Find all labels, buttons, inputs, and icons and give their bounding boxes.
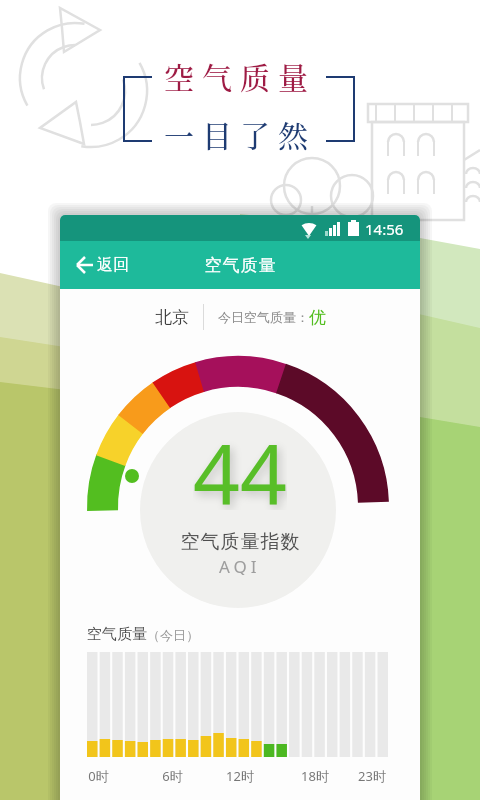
staticText: 返回 (97, 255, 129, 275)
staticText: （今日） (147, 627, 199, 643)
staticText: 空气质量 (87, 625, 147, 644)
button[interactable]: 北京 (60, 289, 420, 345)
staticText: 6时 (162, 767, 183, 785)
staticText: 12时 (226, 767, 254, 785)
staticText: 23时 (358, 767, 386, 785)
staticText: 今日空气质量： (218, 309, 309, 325)
staticText: 0时 (88, 767, 109, 785)
staticText: 一目了然 (164, 112, 316, 155)
staticText: 空气质量 (204, 255, 276, 276)
button[interactable]: 返回 (60, 241, 140, 289)
staticText: 北京 (155, 307, 189, 328)
staticText: 14:56 (365, 219, 404, 239)
staticText: 44 (193, 416, 287, 510)
staticText: 空气质量 (164, 54, 316, 97)
staticText: 优 (309, 307, 326, 328)
staticText: 空气质量指数 (180, 530, 300, 554)
staticText: AQI (219, 555, 261, 575)
staticText: 18时 (301, 767, 329, 785)
